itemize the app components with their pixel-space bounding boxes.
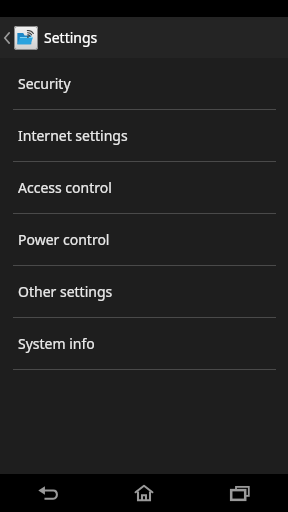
staticText: Access control <box>18 178 112 197</box>
button[interactable]: Other settings <box>0 266 288 318</box>
button[interactable]: Internet settings <box>0 110 288 162</box>
staticText: Security <box>18 74 71 93</box>
staticText: System info <box>18 334 95 353</box>
button[interactable]: Navigate up <box>0 17 38 58</box>
staticText: Settings <box>44 28 98 47</box>
button[interactable]: System info <box>0 318 288 370</box>
staticText: Power control <box>18 230 110 249</box>
staticText: Other settings <box>18 282 113 301</box>
button[interactable]: Recent apps <box>192 474 288 512</box>
button[interactable]: Back <box>0 474 96 512</box>
button[interactable]: Power control <box>0 214 288 266</box>
button[interactable]: Security <box>0 58 288 110</box>
button[interactable]: Home <box>96 474 192 512</box>
button[interactable]: Access control <box>0 162 288 214</box>
staticText: Internet settings <box>18 126 128 145</box>
